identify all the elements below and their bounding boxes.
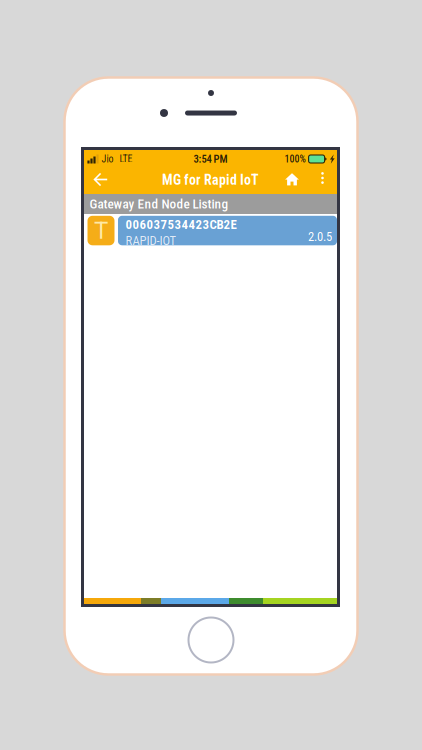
staticText: 2.0.5	[308, 229, 332, 244]
staticText: 100%	[285, 153, 306, 165]
staticText: 3:54 PM	[193, 153, 227, 165]
button[interactable]: Home	[279, 166, 305, 192]
staticText: Jio	[101, 153, 113, 165]
staticText: 006037534423CB2E	[125, 217, 236, 232]
button[interactable]: More options	[311, 165, 333, 191]
staticText: T	[94, 216, 108, 245]
staticText: RAPID-IOT	[125, 233, 176, 248]
staticText: LTE	[119, 153, 132, 165]
button[interactable]: T	[84, 216, 337, 245]
button[interactable]: Back	[85, 167, 115, 193]
staticText: MG for Rapid IoT	[162, 172, 259, 188]
staticText: Gateway End Node Listing	[89, 196, 228, 212]
